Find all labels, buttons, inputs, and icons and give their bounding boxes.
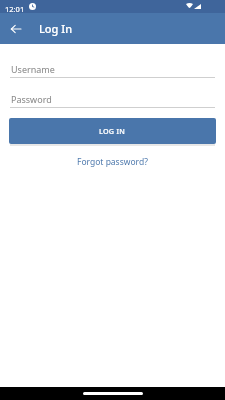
staticText: Log In bbox=[39, 21, 73, 36]
staticText: Forgot password? bbox=[77, 156, 148, 168]
staticText: LOG IN bbox=[99, 126, 126, 136]
button[interactable]: Password bbox=[0, 93, 225, 111]
button[interactable]: Username bbox=[0, 63, 225, 81]
staticText: Password bbox=[11, 93, 52, 105]
button[interactable]: LOG IN bbox=[9, 118, 216, 144]
button[interactable]: Back bbox=[0, 13, 31, 44]
staticText: Username bbox=[11, 63, 55, 75]
button[interactable]: Forgot password? bbox=[71, 152, 154, 172]
staticText: 12:01 bbox=[5, 4, 25, 14]
